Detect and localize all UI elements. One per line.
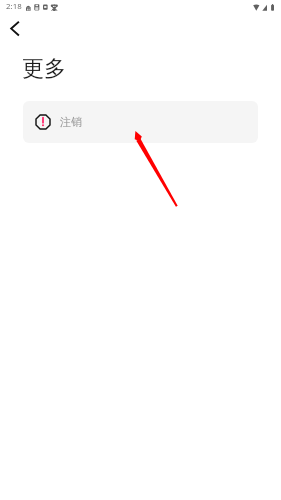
- button[interactable]: Back: [0, 16, 29, 44]
- staticText: 注销: [60, 115, 83, 129]
- button[interactable]: 注销: [23, 101, 258, 143]
- staticText: 更多: [22, 55, 66, 83]
- staticText: 2:18: [6, 1, 22, 12]
